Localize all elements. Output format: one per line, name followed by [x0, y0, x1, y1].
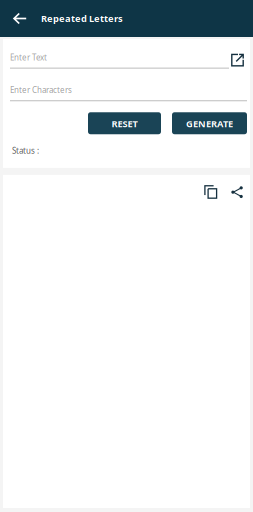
button[interactable]: Back [0, 0, 41, 37]
staticText: Enter Text [10, 52, 47, 63]
button[interactable]: Open in new [231, 54, 244, 69]
button[interactable]: Share [225, 180, 249, 204]
staticText: RESET [111, 118, 137, 130]
button[interactable]: GENERATE [172, 112, 247, 134]
staticText: Status : [12, 145, 39, 156]
button[interactable]: Copy [199, 180, 223, 204]
button[interactable]: RESET [88, 112, 161, 134]
staticText: GENERATE [186, 118, 233, 130]
staticText: Repeated Letters [41, 12, 123, 25]
staticText: Enter Characters [10, 85, 72, 95]
